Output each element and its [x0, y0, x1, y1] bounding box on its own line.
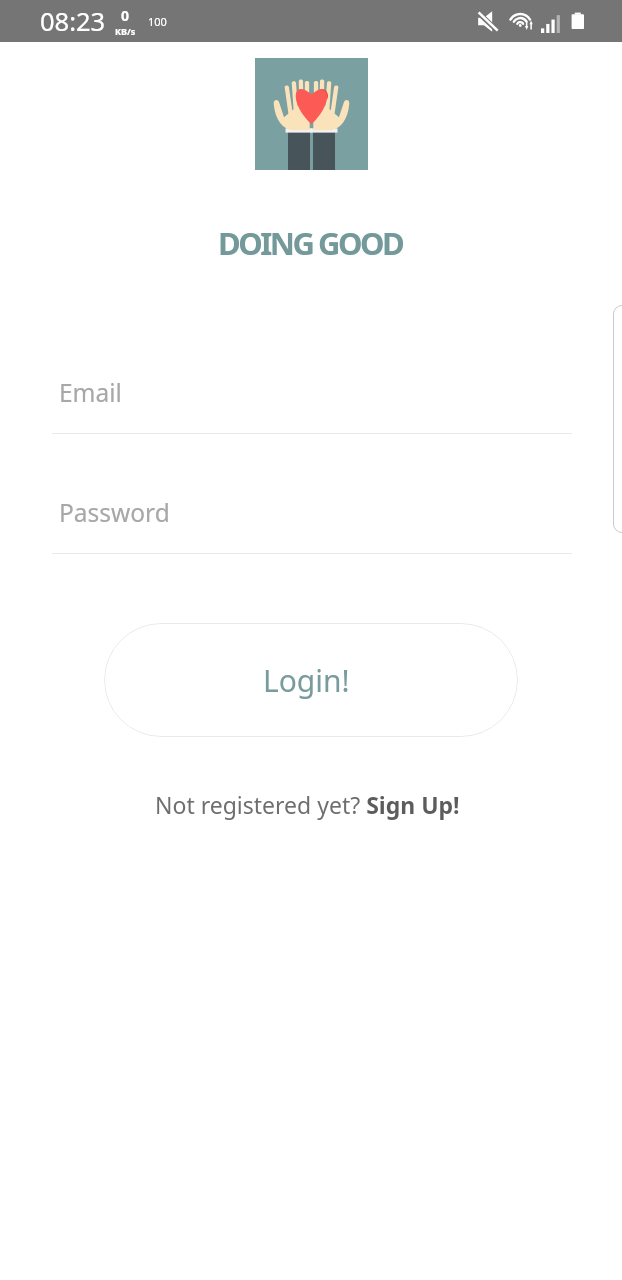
button[interactable]: Not registered yet? Sign Up!	[151, 787, 464, 822]
other: Ringer muted	[477, 10, 500, 33]
staticText: Not registered yet? Sign Up!	[155, 789, 460, 820]
other: Battery	[568, 11, 588, 31]
staticText: Password	[59, 496, 170, 529]
other: Signal	[541, 12, 560, 33]
staticText: 100	[148, 14, 167, 29]
button[interactable]: Email	[52, 360, 572, 434]
staticText: DOING GOOD	[218, 222, 403, 264]
staticText: 0	[121, 6, 130, 25]
button[interactable]: Password	[52, 480, 572, 554]
button[interactable]: Login!	[104, 623, 518, 737]
staticText: KB/s	[115, 25, 136, 37]
staticText: 08:23	[40, 4, 106, 39]
staticText: Login!	[263, 660, 350, 701]
other: Doing Good logo: hands holding a heart	[255, 58, 368, 170]
other: Wi-Fi	[509, 7, 537, 35]
staticText: Email	[59, 376, 122, 409]
